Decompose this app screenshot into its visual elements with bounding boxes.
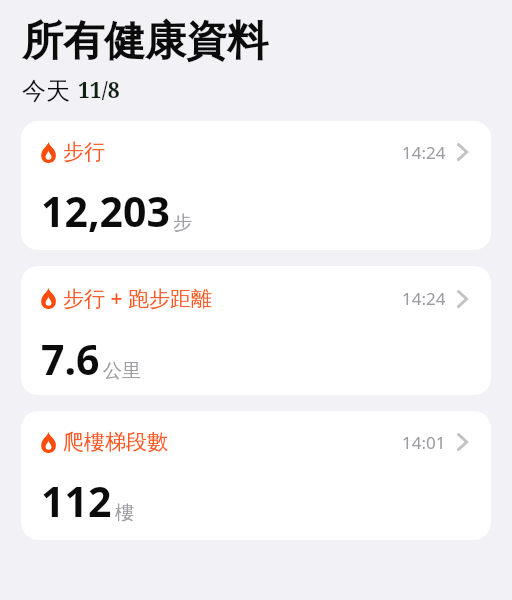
staticText: 公里 <box>103 359 141 383</box>
other: Activity <box>41 432 56 453</box>
button[interactable]: Activity <box>21 121 491 250</box>
staticText: 所有健康資料 <box>22 16 268 68</box>
staticText: 步行 + 跑步距離 <box>63 284 212 313</box>
staticText: 7.6 <box>41 331 100 387</box>
button[interactable]: Activity <box>21 411 491 540</box>
other: Open details <box>456 142 469 162</box>
staticText: 11/8 <box>78 76 120 105</box>
other: Open details <box>456 289 469 309</box>
staticText: 112 <box>41 473 112 529</box>
other: Open details <box>456 432 469 452</box>
staticText: 爬樓梯段數 <box>63 429 168 455</box>
staticText: 14:01 <box>402 431 446 454</box>
staticText: 步 <box>173 211 192 235</box>
button[interactable]: Activity <box>21 266 491 395</box>
staticText: 14:24 <box>402 287 446 310</box>
staticText: 樓 <box>115 501 134 525</box>
other: Activity <box>41 142 56 163</box>
staticText: 12,203 <box>41 183 170 239</box>
staticText: 今天 <box>22 76 70 106</box>
staticText: 14:24 <box>402 141 446 164</box>
other: Activity <box>41 288 56 309</box>
staticText: 步行 <box>63 139 105 165</box>
